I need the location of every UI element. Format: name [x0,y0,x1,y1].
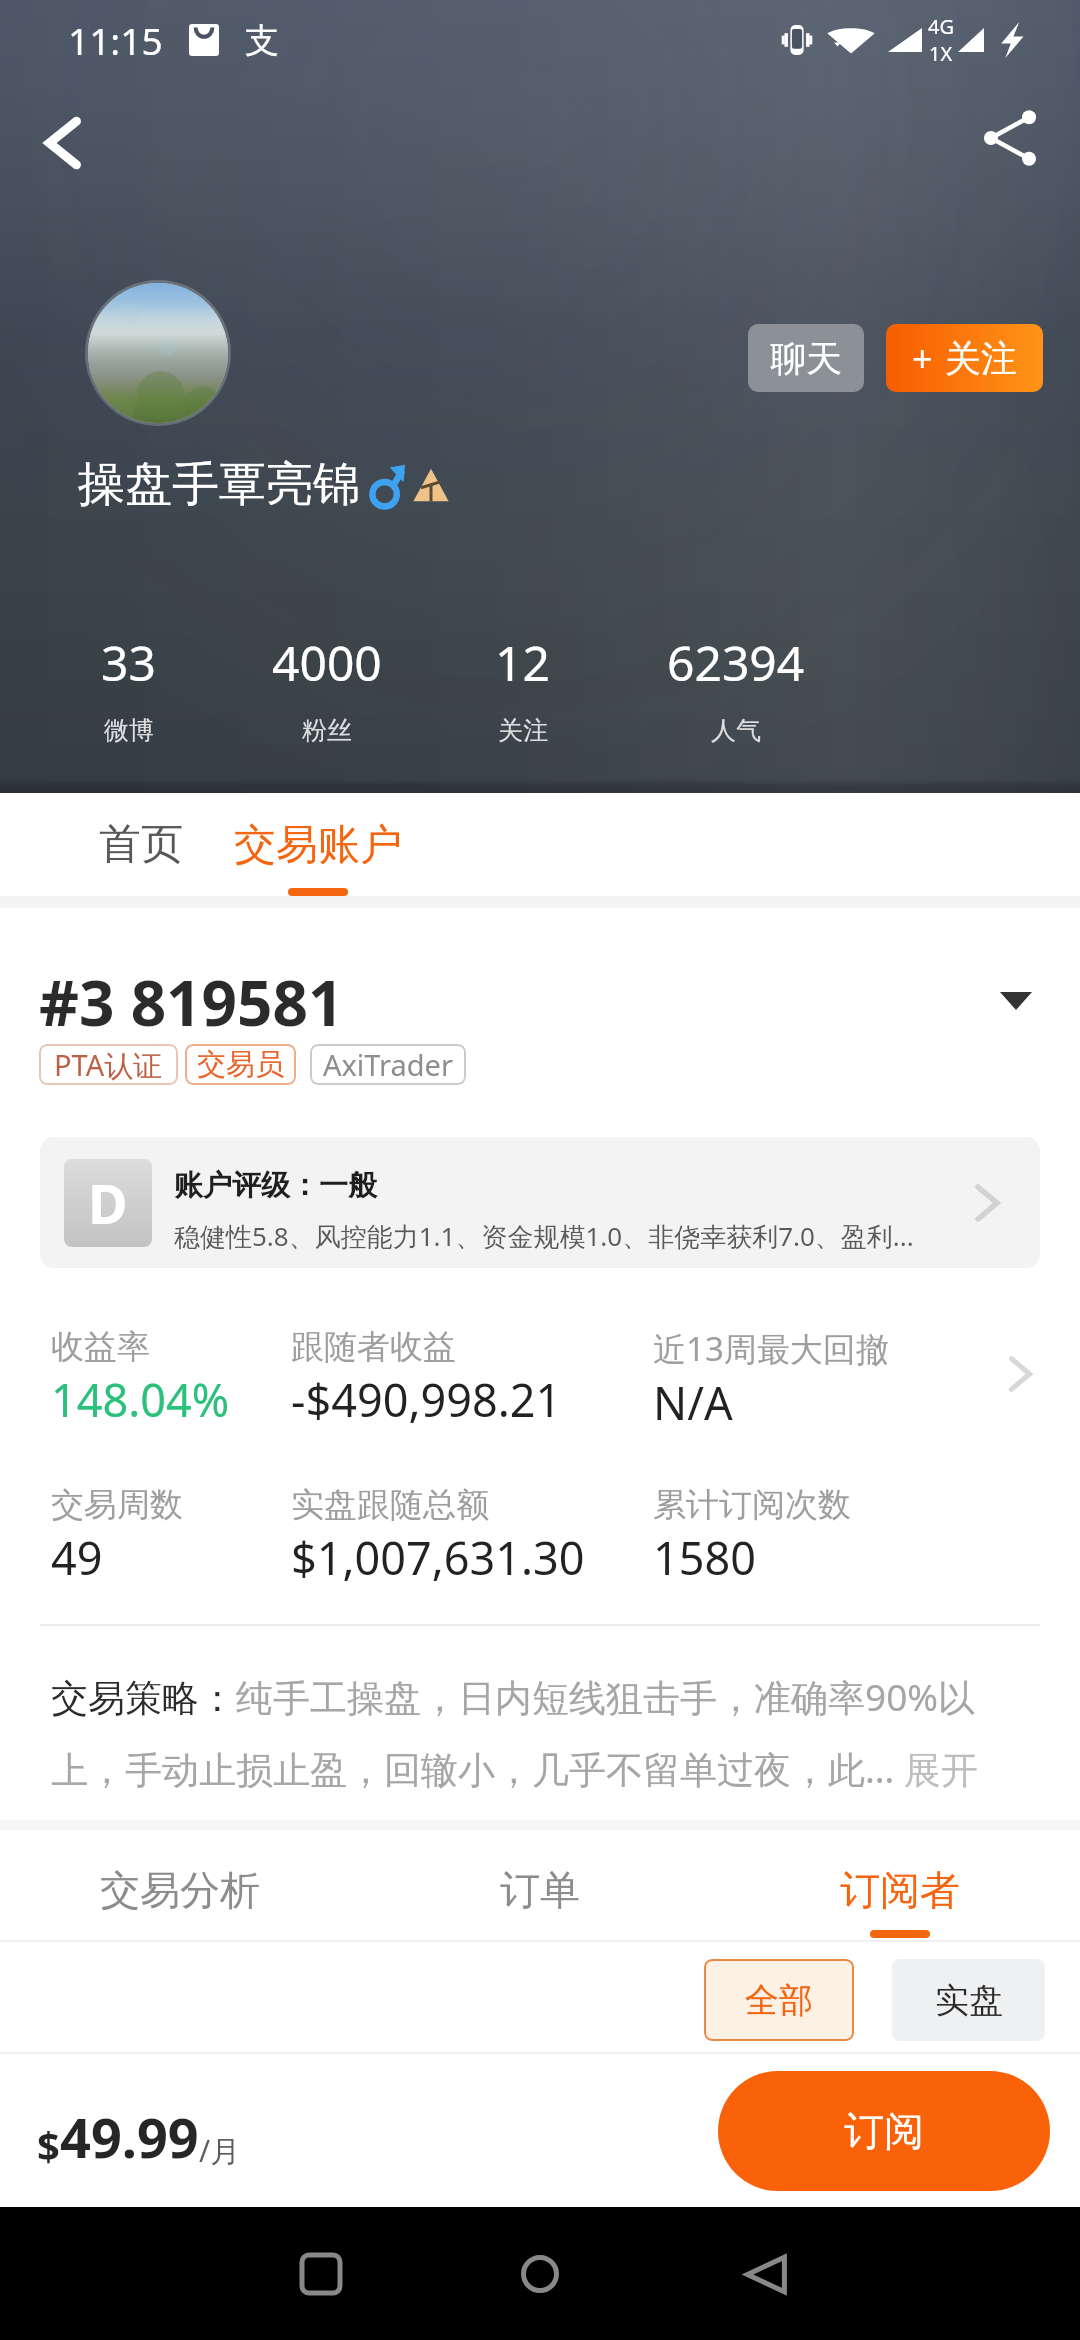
staticText: 4000 [272,630,382,695]
button[interactable]: Home [494,2228,586,2320]
staticText: 148.04% [51,1369,230,1430]
staticText: 49 [51,1527,103,1588]
staticText: 累计订阅次数 [653,1484,851,1526]
staticText: 全部 [745,1979,813,2022]
button[interactable]: Back [719,2228,811,2320]
button[interactable]: 交易分析 [0,1830,360,1942]
staticText: 4G [928,13,954,40]
staticText: 12 [495,630,550,695]
staticText: /月 [199,2130,241,2171]
staticText: 跟随者收益 [291,1326,456,1368]
staticText: -$490,998.21 [291,1369,562,1430]
staticText: 交易账户 [234,819,402,872]
staticText: 1X [929,40,953,67]
staticText: 实盘跟随总额 [291,1484,489,1526]
staticText: #3 819581 [39,960,344,1044]
staticText: 交易策略：纯手工操盘，日内短线狙击手，准确率90%以上，手动止损止盈，回辙小，几… [51,1671,1003,1794]
button[interactable]: 交易员 [185,1044,296,1085]
staticText: 实盘 [935,1979,1003,2022]
staticText: PTA认证 [54,1045,163,1085]
button[interactable]: 全部 [704,1959,854,2041]
staticText: 33 [101,630,156,695]
button[interactable]: Recent apps [275,2228,367,2320]
button[interactable]: 聊天 [748,324,864,392]
staticText: 49.99 [60,2100,199,2174]
staticText: 62394 [667,630,805,695]
button[interactable]: 实盘 [892,1959,1045,2041]
staticText: 交易周数 [51,1484,183,1526]
staticText: 交易分析 [100,1865,260,1915]
button[interactable]: 首页 [99,818,183,871]
staticText: $1,007,631.30 [291,1527,585,1588]
staticText: 交易员 [197,1046,284,1083]
staticText: 订阅者 [840,1865,960,1915]
staticText: 稳健性5.8、风控能力1.1、资金规模1.0、非侥幸获利7.0、盈利... [174,1218,914,1254]
button[interactable]: 交易账户 [234,819,402,872]
button[interactable]: Back [20,98,110,188]
staticText: 近13周最大回撤 [653,1326,889,1371]
button[interactable]: More statistics [988,1342,1052,1406]
staticText: 1580 [653,1527,756,1588]
button[interactable]: Profile photo [88,283,228,423]
staticText: 收益率 [51,1326,150,1368]
button[interactable]: 订阅 [718,2071,1050,2191]
button[interactable]: + [886,324,1043,392]
staticText: 支 [245,19,279,62]
staticText: $ [37,2118,60,2172]
staticText: 人气 [711,715,761,746]
button[interactable]: Switch account [983,968,1049,1034]
button[interactable]: 订阅者 [720,1830,1080,1942]
button[interactable]: Share [965,93,1055,183]
staticText: 关注 [498,715,548,746]
staticText: D [88,1166,128,1240]
staticText: 首页 [99,818,183,871]
staticText: 微博 [104,715,154,746]
button[interactable]: AxiTrader [310,1044,466,1085]
staticText: AxiTrader [323,1045,453,1084]
staticText: 账户评级：一般 [174,1167,377,1204]
staticText: 聊天 [770,336,842,381]
staticText: + [912,334,933,383]
staticText: 粉丝 [302,715,352,746]
button[interactable]: PTA认证 [39,1044,178,1085]
staticText: 订阅 [844,2106,924,2156]
staticText: N/A [653,1372,733,1433]
button[interactable]: D [40,1137,1040,1268]
staticText: 操盘手覃亮锦 [78,455,360,514]
button[interactable]: 订单 [360,1830,720,1942]
staticText: 订单 [500,1865,580,1915]
staticText: 关注 [945,336,1017,381]
staticText: 11:15 [68,15,163,65]
